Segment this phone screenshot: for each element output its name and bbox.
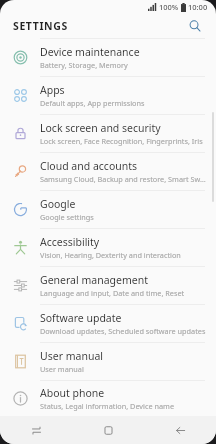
staticText: 100% [159,2,179,12]
staticText: Default apps, App permissions [40,98,145,108]
button[interactable]: Search [185,16,205,36]
button[interactable]: Software update [0,304,216,342]
staticText: Language and input, Date and time, Reset [40,288,185,298]
button[interactable]: Accessibility [0,228,216,266]
button[interactable]: About phone [0,380,216,416]
staticText: Google settings [40,212,94,222]
staticText: Device maintenance [40,45,140,59]
button[interactable]: Device maintenance [0,38,216,76]
button[interactable]: Home [72,416,144,444]
staticText: SETTINGS [13,19,68,33]
button[interactable]: Recents [0,416,72,444]
button[interactable]: Back [144,416,216,444]
staticText: General management [40,273,148,287]
staticText: Google [40,197,76,211]
staticText: 10:00 [188,2,208,12]
staticText: Lock screen and security [40,121,161,135]
staticText: Samsung Cloud, Backup and restore, Smart… [40,174,206,184]
staticText: Lock screen, Face Recognition, Fingerpri… [40,136,203,146]
staticText: Accessibility [40,235,100,249]
staticText: Software update [40,311,122,325]
button[interactable]: Apps [0,76,216,114]
staticText: About phone [40,386,105,400]
button[interactable]: Lock screen and security [0,114,216,152]
staticText: Cloud and accounts [40,159,138,173]
staticText: User manual [40,364,84,374]
staticText: User manual [40,349,103,363]
staticText: Status, Legal information, Device name [40,401,175,411]
staticText: Download updates, Scheduled software upd… [40,326,206,336]
button[interactable]: Google [0,190,216,228]
staticText: Vision, Hearing, Dexterity and interacti… [40,250,181,260]
button[interactable]: Cloud and accounts [0,152,216,190]
button[interactable]: General management [0,266,216,304]
staticText: Apps [40,83,65,97]
button[interactable]: User manual [0,342,216,380]
staticText: Battery, Storage, Memory [40,60,128,70]
